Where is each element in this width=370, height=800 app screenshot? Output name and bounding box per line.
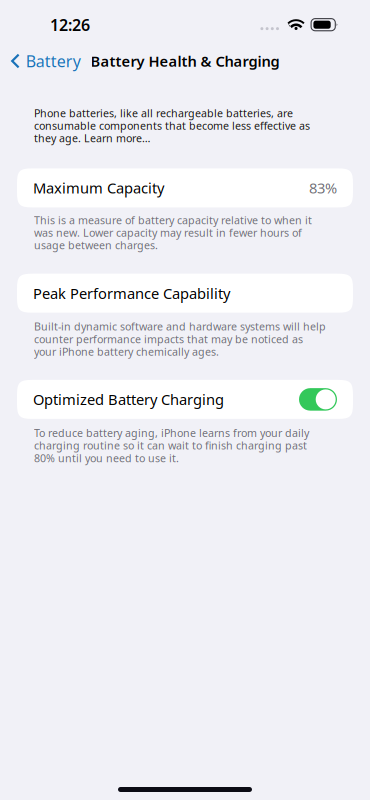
button[interactable]: Optimized Battery Charging <box>299 388 337 411</box>
staticText: Built-in dynamic software and hardware s… <box>34 319 326 359</box>
staticText: Optimized Battery Charging <box>33 390 224 409</box>
staticText: Battery Health & Charging <box>90 51 279 71</box>
staticText: Peak Performance Capability <box>33 283 230 303</box>
staticText: This is a measure of battery capacity re… <box>34 213 312 252</box>
staticText: To reduce battery aging, iPhone learns f… <box>34 426 309 465</box>
button[interactable]: Battery <box>0 46 93 76</box>
staticText: 83% <box>309 178 337 198</box>
staticText: Maximum Capacity <box>33 178 164 198</box>
staticText: Phone batteries, like all rechargeable b… <box>34 106 310 145</box>
staticText: Battery <box>26 50 81 72</box>
button[interactable]: Peak Performance Capability <box>17 274 353 313</box>
staticText: 12:26 <box>50 14 90 35</box>
